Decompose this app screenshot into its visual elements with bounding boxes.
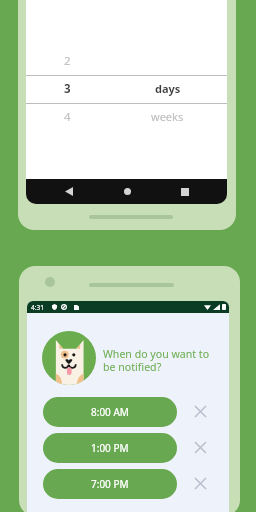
staticText: 7:00 PM xyxy=(91,477,129,491)
button[interactable]: Remove 8:00 AM xyxy=(190,401,211,422)
button[interactable]: 1:00 PM xyxy=(43,433,177,463)
button[interactable]: 4 xyxy=(26,104,227,131)
staticText: 2 xyxy=(64,53,71,69)
button[interactable]: 7:00 PM xyxy=(43,469,177,499)
staticText: 8:00 AM xyxy=(91,405,129,419)
button[interactable]: Home xyxy=(124,188,131,195)
staticText: 4:31 xyxy=(31,303,44,312)
staticText: When do you want to be notified? xyxy=(103,347,210,374)
button[interactable]: Back xyxy=(65,187,73,196)
staticText: 3 xyxy=(64,81,71,97)
staticText: weeks xyxy=(151,109,184,124)
button[interactable]: Remove 1:00 PM xyxy=(190,437,211,458)
button[interactable]: 8:00 AM xyxy=(43,397,177,427)
button[interactable]: Remove 7:00 PM xyxy=(190,473,211,494)
staticText: 1:00 PM xyxy=(91,441,129,455)
staticText: 4 xyxy=(64,109,71,125)
button[interactable]: 2 xyxy=(26,48,227,75)
button[interactable]: 3 xyxy=(26,76,227,103)
staticText: days xyxy=(155,81,181,96)
